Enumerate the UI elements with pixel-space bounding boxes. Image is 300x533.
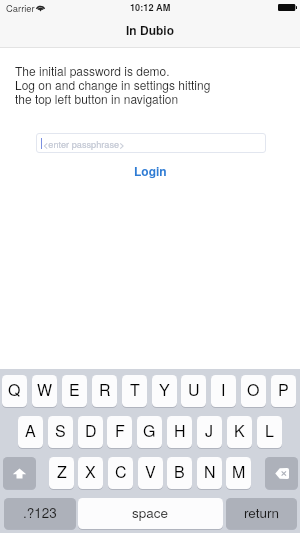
button[interactable]: Z: [49, 457, 74, 489]
staticText: The initial password is demo.: [15, 62, 170, 79]
button[interactable]: B: [167, 457, 192, 489]
staticText: <enter passphrase>: [43, 137, 125, 150]
staticText: .?123: [23, 503, 57, 522]
staticText: the top left button in navigation: [15, 90, 179, 107]
button[interactable]: D: [78, 416, 103, 448]
button[interactable]: Login: [126, 159, 175, 182]
staticText: P: [278, 378, 289, 401]
button[interactable]: W: [32, 375, 57, 407]
staticText: U: [188, 378, 200, 401]
staticText: G: [143, 419, 156, 442]
staticText: A: [25, 419, 36, 442]
button[interactable]: L: [257, 416, 282, 448]
staticText: W: [37, 378, 53, 401]
button[interactable]: J: [197, 416, 222, 448]
button[interactable]: I: [211, 375, 236, 407]
staticText: Log on and change in settings hitting: [15, 76, 211, 93]
staticText: T: [130, 378, 140, 401]
staticText: S: [55, 419, 66, 442]
button[interactable]: S: [48, 416, 73, 448]
staticText: Carrier: [6, 1, 35, 14]
button[interactable]: C: [108, 457, 133, 489]
button[interactable]: O: [241, 375, 266, 407]
staticText: H: [174, 419, 186, 442]
staticText: Q: [8, 378, 21, 401]
button[interactable]: space: [78, 498, 223, 529]
button[interactable]: P: [271, 375, 296, 407]
button[interactable]: E: [62, 375, 87, 407]
staticText: V: [145, 460, 156, 483]
button[interactable]: T: [122, 375, 147, 407]
button[interactable]: V: [138, 457, 163, 489]
button[interactable]: F: [107, 416, 132, 448]
staticText: N: [204, 460, 216, 483]
button[interactable]: X: [78, 457, 103, 489]
staticText: Z: [57, 460, 67, 483]
staticText: Y: [159, 378, 170, 401]
staticText: B: [174, 460, 185, 483]
button[interactable]: Q: [2, 375, 27, 407]
staticText: E: [69, 378, 80, 401]
button[interactable]: K: [227, 416, 252, 448]
staticText: F: [115, 419, 125, 442]
staticText: L: [265, 419, 274, 442]
button[interactable]: U: [181, 375, 206, 407]
staticText: Login: [134, 162, 167, 179]
staticText: R: [99, 378, 111, 401]
button[interactable]: .?123: [4, 498, 76, 529]
staticText: K: [234, 419, 245, 442]
button[interactable]: Y: [152, 375, 177, 407]
button[interactable]: M: [226, 457, 251, 489]
button[interactable]: A: [18, 416, 43, 448]
button[interactable]: <enter passphrase>: [36, 133, 266, 153]
button[interactable]: H: [167, 416, 192, 448]
button[interactable]: return: [226, 498, 297, 529]
staticText: M: [232, 460, 246, 483]
button[interactable]: R: [92, 375, 117, 407]
staticText: return: [244, 503, 279, 522]
button[interactable]: G: [137, 416, 162, 448]
staticText: I: [221, 378, 226, 401]
button[interactable]: Shift: [3, 457, 36, 489]
staticText: D: [85, 419, 97, 442]
staticText: X: [85, 460, 96, 483]
staticText: 10:12 AM: [130, 1, 171, 14]
staticText: J: [205, 419, 214, 442]
staticText: space: [132, 503, 169, 522]
button[interactable]: Delete: [265, 457, 298, 489]
staticText: O: [247, 378, 260, 401]
staticText: In Dubio: [126, 21, 175, 38]
button[interactable]: N: [197, 457, 222, 489]
staticText: C: [115, 460, 127, 483]
